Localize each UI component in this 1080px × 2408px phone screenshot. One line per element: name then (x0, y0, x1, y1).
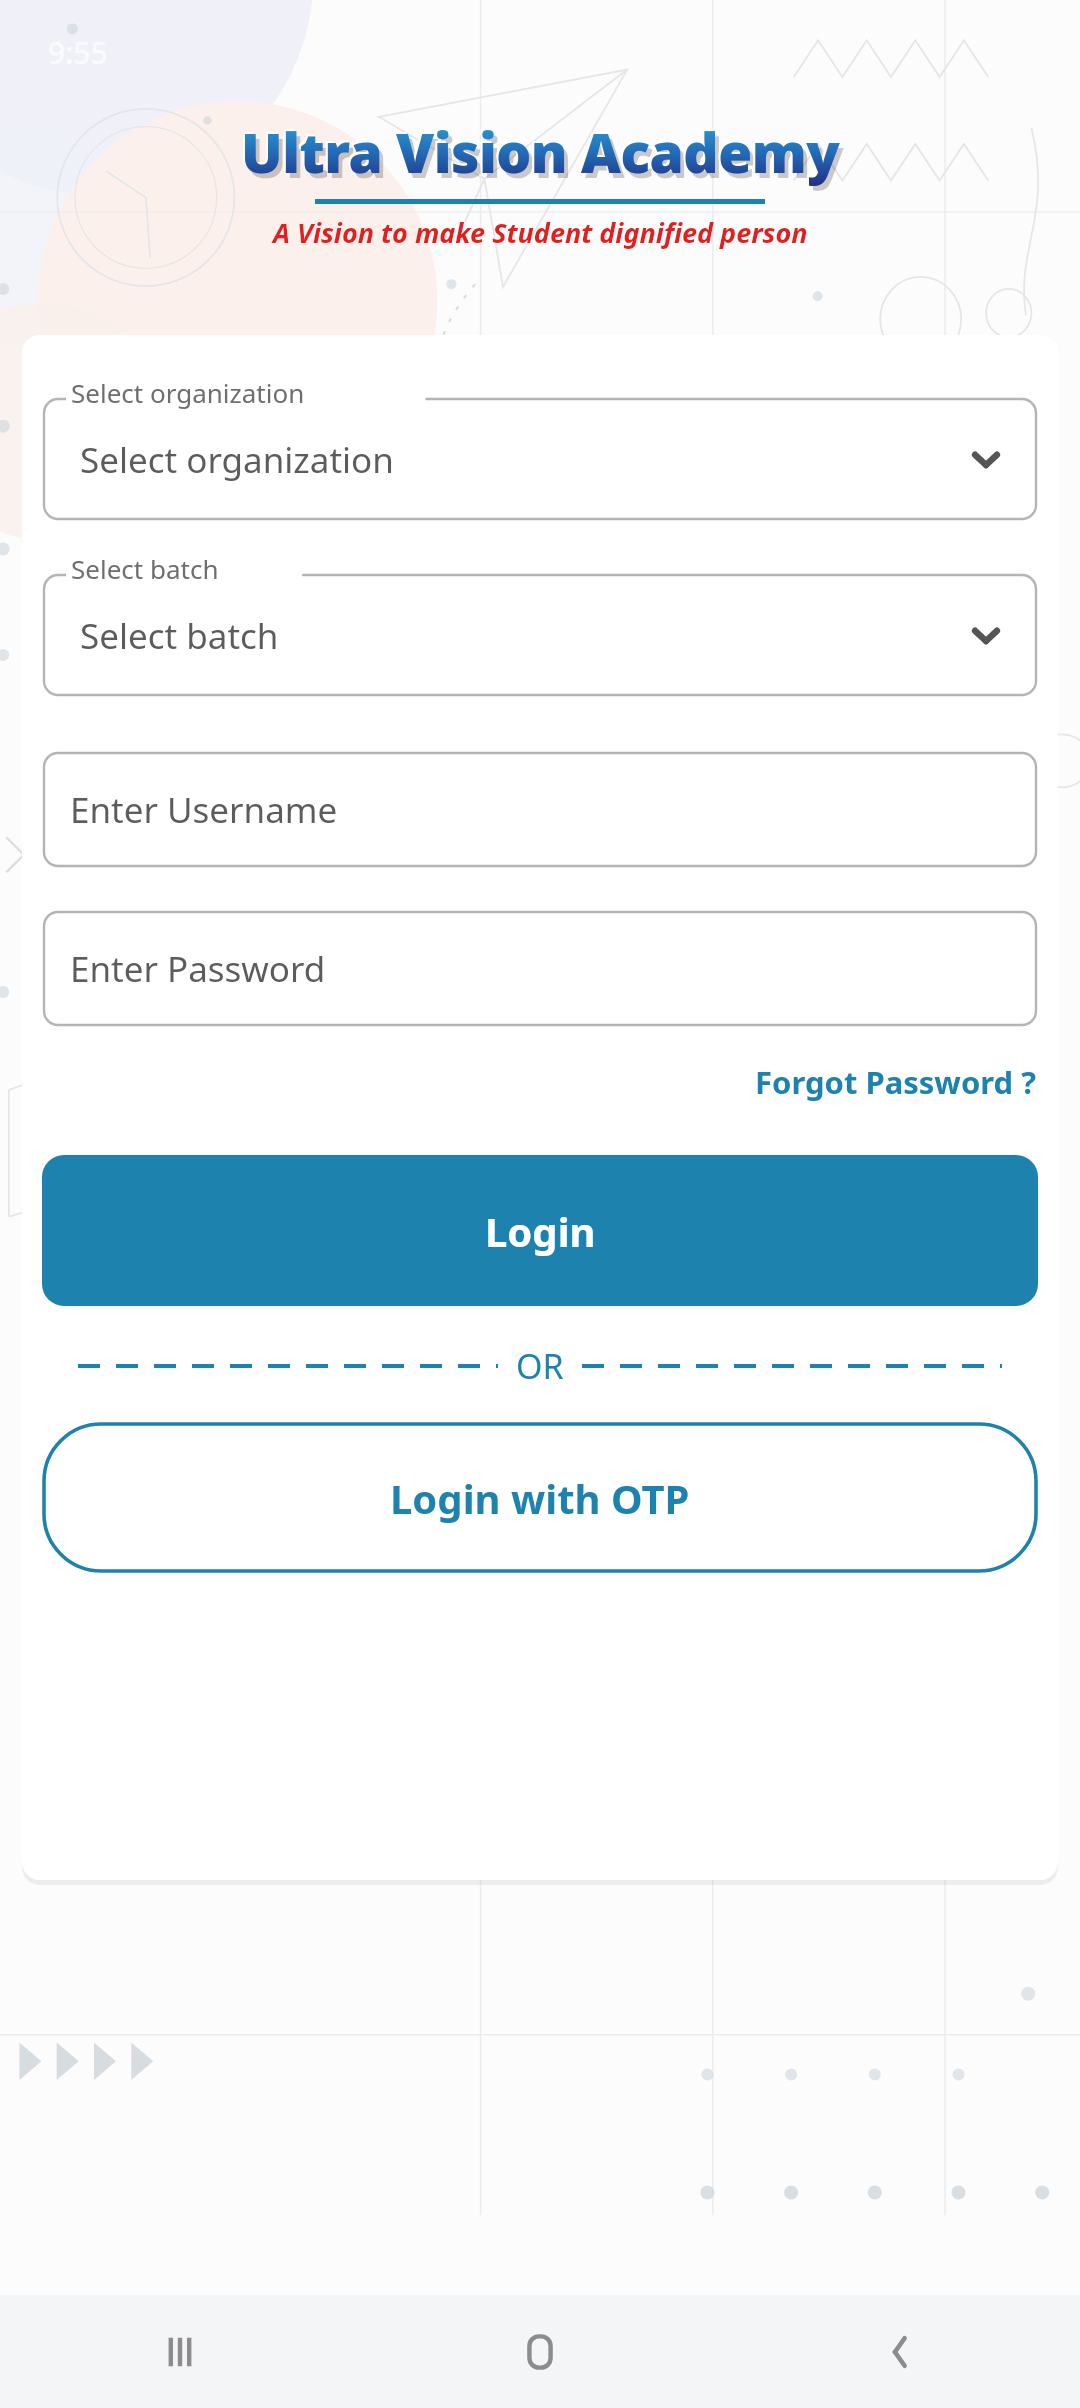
staticText: Select batch (80, 612, 279, 660)
staticText: OR (516, 1343, 564, 1389)
staticText: Ultra Vision Academy (239, 112, 838, 187)
staticText: Enter Password (70, 945, 326, 993)
button[interactable]: Back (840, 2295, 960, 2408)
staticText: A Vision to make Student dignified perso… (273, 214, 808, 251)
button[interactable]: Recent apps (120, 2295, 240, 2408)
staticText: Select batch (71, 551, 219, 586)
button[interactable]: Enter Username (42, 751, 1038, 868)
button[interactable]: Select organization (42, 385, 1038, 521)
staticText: Select organization (71, 375, 305, 410)
staticText: Select organization (80, 436, 394, 484)
button[interactable]: Select batch (42, 561, 1038, 697)
button[interactable]: Forgot Password ? (42, 1057, 1038, 1107)
button[interactable]: Login with OTP (42, 1422, 1038, 1573)
staticText: Ultra Vision Academy (245, 119, 844, 194)
staticText: Login with OTP (390, 1471, 690, 1525)
button[interactable]: Home (480, 2295, 600, 2408)
button[interactable]: Login (42, 1155, 1038, 1306)
staticText: Login (485, 1204, 596, 1258)
staticText: Enter Username (70, 786, 338, 834)
staticText: Ultra Vision Academy (241, 114, 840, 189)
staticText: Forgot Password ? (755, 1061, 1036, 1103)
button[interactable]: Enter Password (42, 910, 1038, 1027)
staticText: 9:55 (48, 32, 108, 73)
